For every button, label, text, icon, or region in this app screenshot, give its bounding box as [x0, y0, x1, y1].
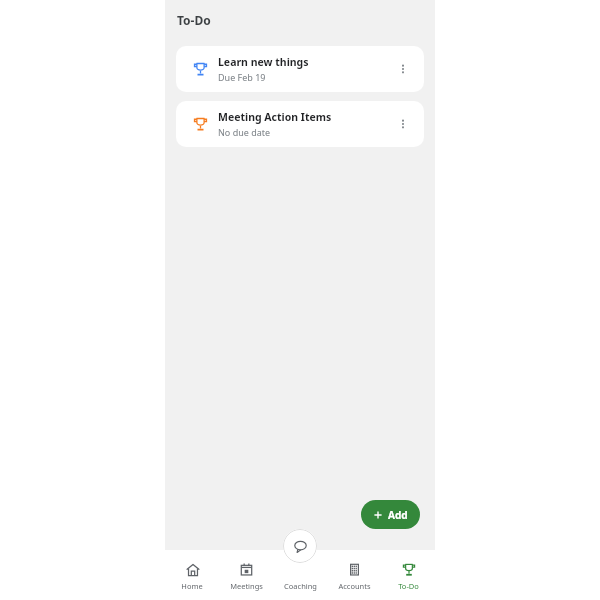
button[interactable]: Coaching [283, 529, 317, 563]
staticText: Learn new things [218, 55, 309, 69]
staticText: Accounts [338, 581, 371, 591]
button[interactable]: Coaching [273, 550, 327, 600]
button[interactable]: Add [361, 500, 420, 529]
button[interactable]: More options [392, 113, 414, 135]
button[interactable]: Home [165, 550, 219, 600]
staticText: To-Do [398, 581, 419, 591]
staticText: Meetings [230, 581, 263, 591]
staticText: To-Do [177, 12, 211, 28]
button[interactable]: Meeting Action Items [176, 101, 424, 147]
staticText: Home [181, 581, 203, 591]
button[interactable]: Accounts [327, 550, 381, 600]
button[interactable]: More options [392, 58, 414, 80]
staticText: No due date [218, 126, 271, 138]
staticText: Meeting Action Items [218, 110, 332, 124]
staticText: Due Feb 19 [218, 71, 266, 83]
button[interactable]: Meetings [219, 550, 273, 600]
button[interactable]: Learn new things [176, 46, 424, 92]
staticText: Add [388, 508, 408, 522]
button[interactable]: To-Do [381, 550, 435, 600]
staticText: Coaching [284, 581, 317, 591]
